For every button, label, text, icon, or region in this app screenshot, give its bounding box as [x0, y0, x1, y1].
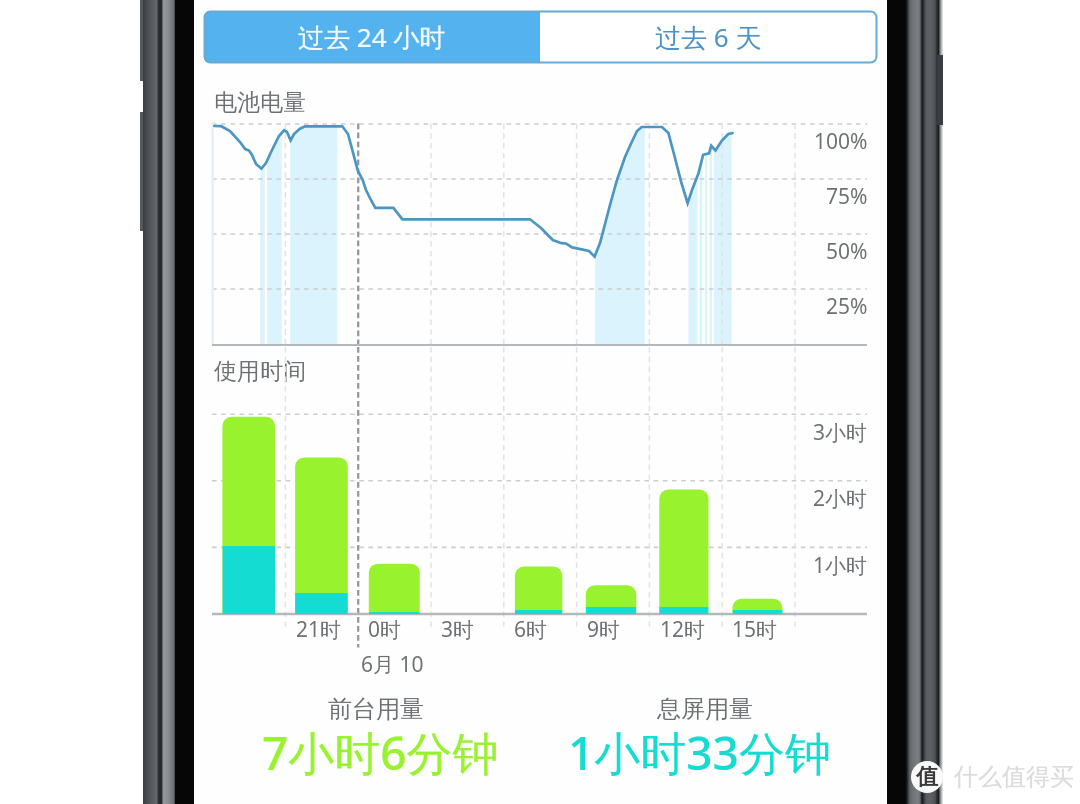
staticText: 75%: [826, 182, 868, 211]
staticText: 3时: [441, 615, 475, 644]
staticText: 2小时: [813, 484, 868, 513]
staticText: 值: [916, 763, 938, 791]
staticText: 过去 24 小时: [298, 19, 446, 55]
staticText: 电池电量: [214, 88, 306, 117]
button[interactable]: 息屏用量: [555, 694, 855, 772]
button[interactable]: 过去 24 小时: [204, 11, 540, 63]
staticText: 7小时6分钟: [262, 721, 499, 784]
button[interactable]: 前台用量: [226, 694, 526, 772]
staticText: 9时: [587, 615, 621, 644]
staticText: 6时: [514, 615, 548, 644]
staticText: 前台用量: [328, 694, 424, 724]
staticText: 100%: [814, 127, 868, 156]
staticText: 6月 10: [361, 650, 424, 679]
staticText: 1小时33分钟: [568, 721, 831, 784]
staticText: 12时: [660, 615, 706, 644]
staticText: 什么值得买: [954, 762, 1074, 792]
staticText: 3小时: [813, 418, 868, 447]
staticText: 15时: [732, 615, 778, 644]
button[interactable]: 过去 6 天: [540, 11, 877, 63]
staticText: 0时: [368, 615, 402, 644]
staticText: 50%: [826, 237, 868, 266]
staticText: 21时: [296, 615, 342, 644]
staticText: 25%: [826, 292, 868, 321]
staticText: 过去 6 天: [655, 19, 762, 55]
staticText: 1小时: [813, 551, 868, 580]
staticText: 使用时间: [214, 357, 306, 386]
staticText: 息屏用量: [657, 694, 753, 724]
